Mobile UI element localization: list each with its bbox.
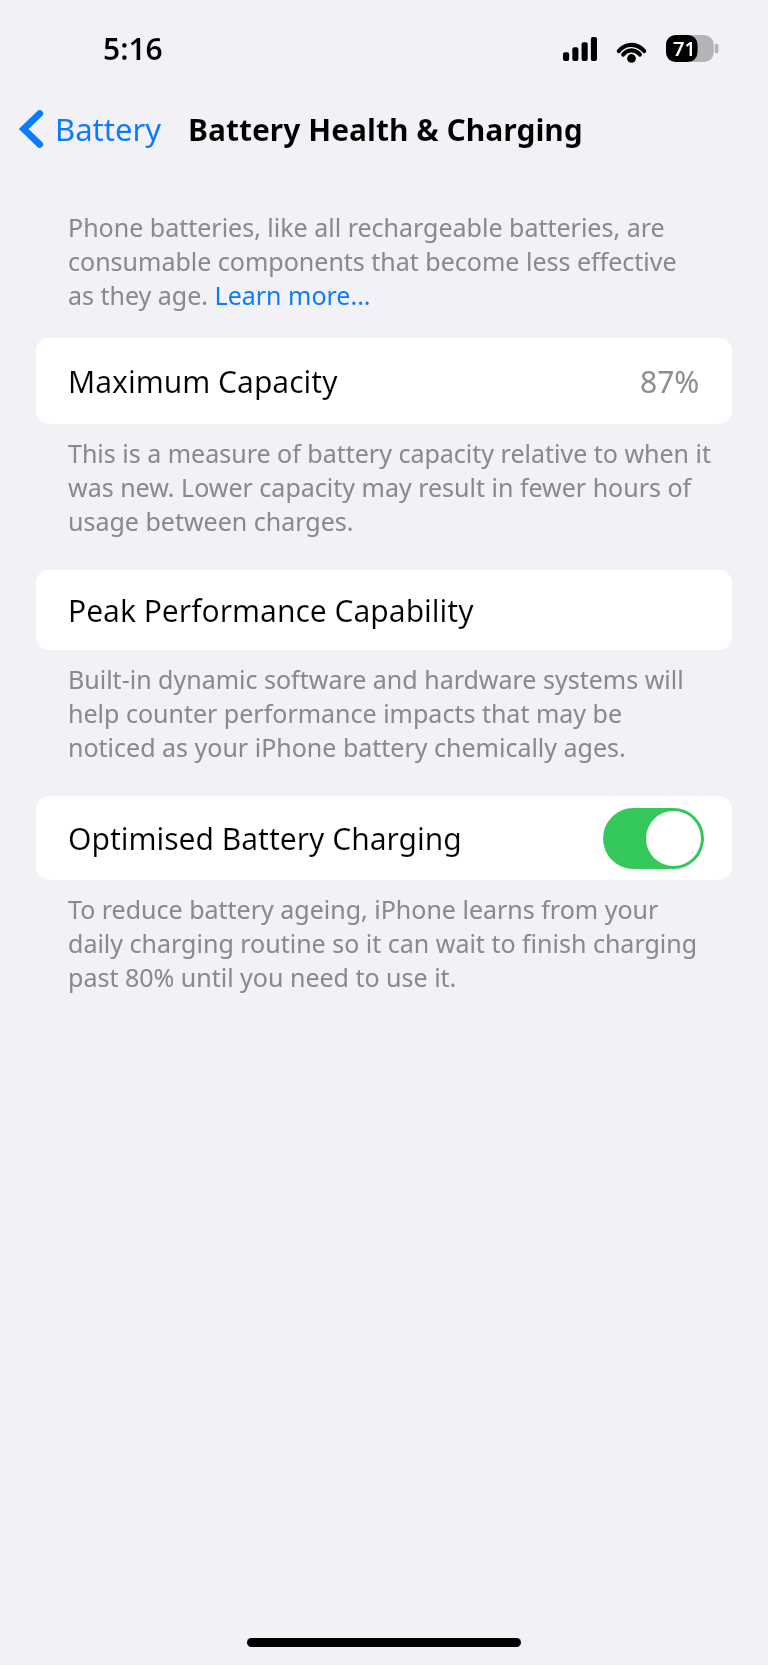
staticText: This is a measure of battery capacity re… xyxy=(68,436,712,538)
other: Back xyxy=(20,111,43,147)
staticText: 71 xyxy=(673,35,696,62)
staticText: Built-in dynamic software and hardware s… xyxy=(68,662,712,764)
staticText: 5:16 xyxy=(103,28,163,69)
staticText: Battery xyxy=(55,108,162,150)
staticText: 87% xyxy=(640,361,700,402)
staticText: Phone batteries, like all rechargeable b… xyxy=(68,210,706,312)
staticText: Peak Performance Capability xyxy=(68,590,474,631)
button[interactable]: Optimised Battery Charging, on xyxy=(603,808,704,869)
staticText: Battery Health & Charging xyxy=(188,109,583,150)
staticText: To reduce battery ageing, iPhone learns … xyxy=(68,892,712,994)
button[interactable]: Maximum Capacity xyxy=(36,338,732,424)
staticText: Maximum Capacity xyxy=(68,361,338,402)
other: Battery 71 percent xyxy=(666,35,720,62)
button[interactable]: Back xyxy=(14,100,168,158)
staticText: Optimised Battery Charging xyxy=(68,818,462,859)
button[interactable]: Peak Performance Capability xyxy=(36,570,732,650)
